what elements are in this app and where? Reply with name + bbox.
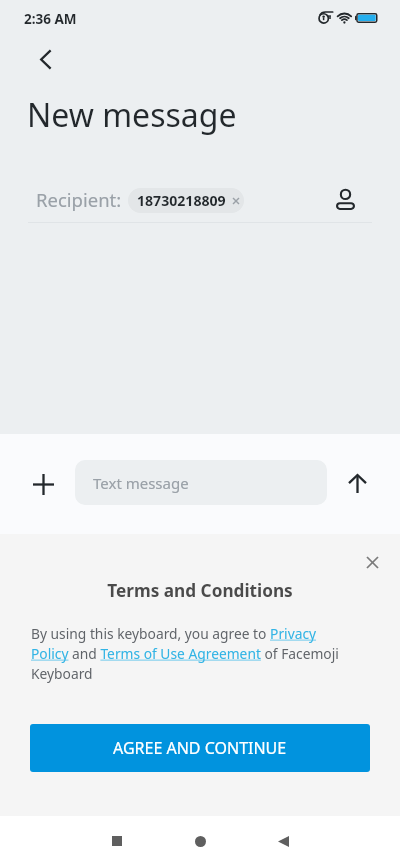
button[interactable]: Text message [75, 460, 327, 505]
staticText: AGREE AND CONTINUE [113, 737, 287, 759]
button[interactable]: Back [259, 817, 307, 865]
button[interactable]: Close [350, 540, 394, 584]
staticText: 18730218809 [137, 191, 226, 210]
button[interactable]: Choose contact [327, 181, 363, 217]
button[interactable]: Send [335, 462, 379, 506]
button[interactable]: Home [176, 817, 224, 865]
button[interactable]: Add attachment [21, 462, 65, 506]
staticText: New message [27, 93, 237, 137]
staticText: 2:36 AM [24, 10, 77, 28]
button[interactable]: 18730218809 [128, 188, 244, 213]
button[interactable]: AGREE AND CONTINUE [30, 724, 370, 772]
button[interactable]: Back [23, 37, 68, 82]
staticText: Text message [93, 473, 189, 493]
staticText: Terms and Conditions [0, 579, 400, 602]
staticText: By using this keyboard, you agree to Pri… [31, 624, 347, 683]
staticText: Recipient: [36, 187, 122, 212]
button[interactable]: Recents [93, 817, 141, 865]
